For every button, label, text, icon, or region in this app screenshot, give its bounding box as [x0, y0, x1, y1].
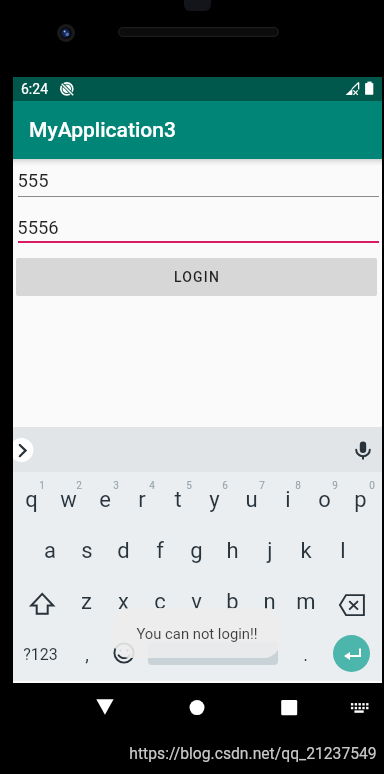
- button[interactable]: u: [233, 473, 270, 526]
- staticText: x: [118, 589, 129, 615]
- staticText: 5556: [17, 217, 59, 239]
- button[interactable]: o: [306, 473, 343, 526]
- staticText: 8: [295, 480, 301, 492]
- staticText: k: [300, 538, 312, 564]
- button[interactable]: Home: [177, 693, 217, 721]
- button[interactable]: b: [214, 576, 251, 627]
- button[interactable]: q: [13, 473, 50, 526]
- button[interactable]: Space: [141, 627, 287, 682]
- button[interactable]: f: [141, 525, 178, 576]
- button[interactable]: Voice input: [353, 440, 373, 462]
- button[interactable]: g: [178, 525, 215, 576]
- button[interactable]: Emoji: [105, 625, 142, 680]
- staticText: u: [245, 487, 258, 513]
- staticText: o: [318, 487, 331, 513]
- other: Battery: [364, 80, 376, 97]
- button[interactable]: Enter: [324, 626, 379, 681]
- staticText: y: [209, 487, 220, 513]
- button[interactable]: a: [31, 525, 68, 576]
- staticText: g: [190, 538, 203, 564]
- button[interactable]: y: [196, 473, 233, 526]
- staticText: b: [226, 589, 239, 615]
- staticText: c: [154, 589, 166, 615]
- staticText: l: [340, 538, 346, 564]
- button[interactable]: l: [324, 525, 361, 576]
- other: Sync disabled: [60, 82, 74, 96]
- button[interactable]: c: [141, 576, 178, 627]
- staticText: You can not login!!: [136, 625, 258, 642]
- staticText: e: [99, 487, 111, 513]
- button[interactable]: z: [68, 576, 105, 627]
- button[interactable]: i: [269, 473, 306, 526]
- staticText: q: [25, 487, 38, 513]
- staticText: 555: [17, 170, 49, 192]
- staticText: i: [285, 487, 291, 513]
- button[interactable]: Switch keyboard: [340, 693, 378, 721]
- staticText: 7: [259, 480, 265, 492]
- button[interactable]: LOGIN: [16, 258, 377, 296]
- button[interactable]: 5556: [17, 212, 378, 244]
- staticText: h: [226, 538, 239, 564]
- staticText: ,: [85, 644, 89, 665]
- staticText: p: [354, 487, 367, 513]
- staticText: r: [138, 487, 146, 513]
- staticText: 4: [149, 480, 155, 492]
- button[interactable]: d: [105, 525, 142, 576]
- staticText: 3: [113, 480, 119, 492]
- button[interactable]: ?123: [13, 627, 68, 682]
- staticText: d: [117, 538, 130, 564]
- other: No signal: [344, 80, 361, 97]
- button[interactable]: Backspace: [324, 579, 379, 630]
- staticText: MyApplication3: [29, 118, 176, 143]
- button[interactable]: n: [251, 576, 288, 627]
- button[interactable]: e: [86, 473, 123, 526]
- button[interactable]: Shift: [13, 576, 68, 627]
- button[interactable]: Back: [85, 693, 125, 721]
- button[interactable]: m: [287, 576, 324, 627]
- button[interactable]: s: [68, 525, 105, 576]
- staticText: j: [267, 538, 273, 564]
- button[interactable]: h: [214, 525, 251, 576]
- staticText: 9: [332, 480, 338, 492]
- staticText: n: [263, 589, 276, 615]
- staticText: 5: [186, 480, 192, 492]
- staticText: .: [303, 644, 308, 665]
- staticText: 6: [222, 480, 228, 492]
- button[interactable]: k: [287, 525, 324, 576]
- staticText: a: [44, 538, 56, 564]
- staticText: t: [174, 487, 182, 513]
- staticText: v: [191, 589, 202, 615]
- button[interactable]: ,: [68, 627, 105, 682]
- staticText: LOGIN: [174, 269, 220, 285]
- button[interactable]: j: [251, 525, 288, 576]
- staticText: 2: [76, 480, 82, 492]
- staticText: 1: [39, 480, 45, 492]
- button[interactable]: More suggestions: [13, 438, 34, 462]
- button[interactable]: .: [287, 627, 324, 682]
- button[interactable]: x: [105, 576, 142, 627]
- staticText: https://blog.csdn.net/qq_21237549: [129, 744, 377, 762]
- button[interactable]: w: [50, 473, 87, 526]
- staticText: m: [296, 589, 316, 615]
- staticText: z: [81, 589, 92, 615]
- button[interactable]: p: [342, 473, 379, 526]
- staticText: ?123: [23, 645, 58, 664]
- button[interactable]: r: [123, 473, 160, 526]
- staticText: s: [81, 538, 93, 564]
- button[interactable]: 555: [17, 165, 378, 197]
- staticText: f: [156, 538, 164, 564]
- staticText: 6:24: [21, 81, 48, 97]
- staticText: 0: [369, 480, 375, 492]
- staticText: w: [60, 487, 77, 513]
- button[interactable]: v: [178, 576, 215, 627]
- button[interactable]: Recents: [269, 693, 309, 721]
- button[interactable]: t: [159, 473, 196, 526]
